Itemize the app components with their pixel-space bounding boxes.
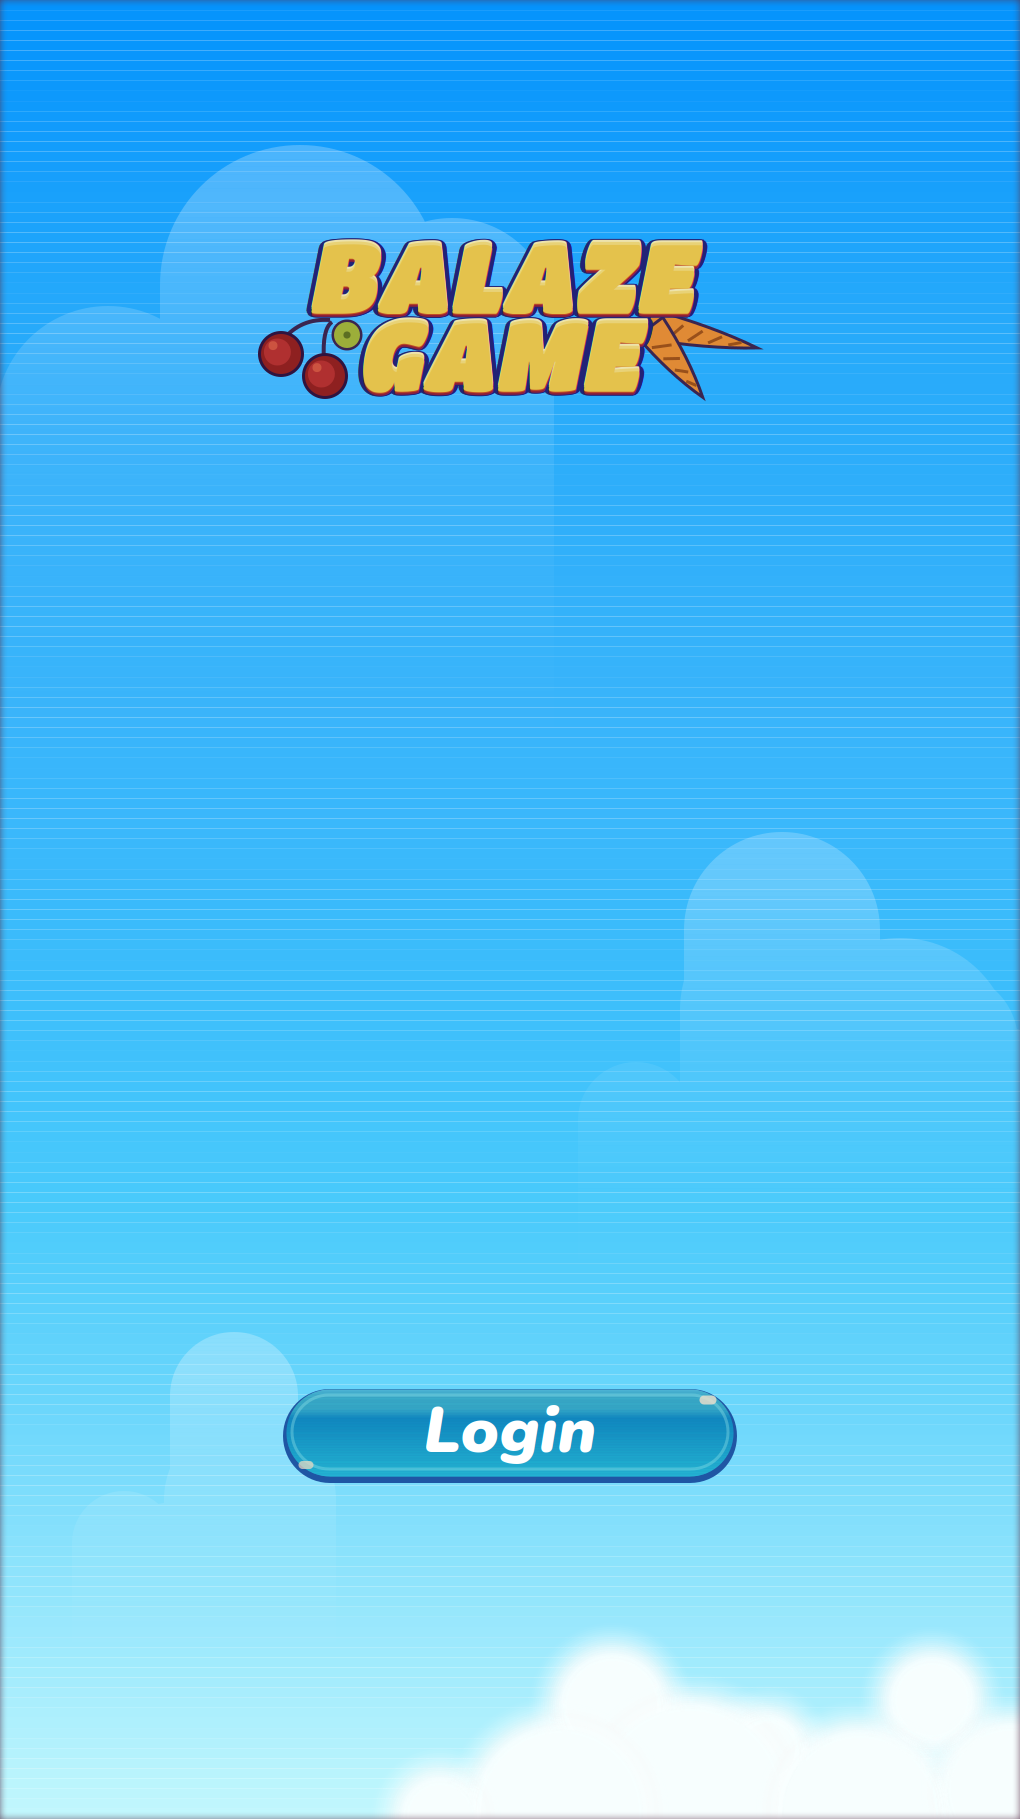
- staticText: GAME: [360, 296, 643, 408]
- staticText: BALAZE: [309, 214, 695, 325]
- staticText: GAME: [357, 292, 640, 403]
- staticText: BALAZE: [312, 220, 698, 332]
- staticText: BALAZE: [303, 222, 689, 333]
- staticText: BALAZE: [305, 214, 691, 325]
- staticText: GAME: [355, 300, 638, 412]
- staticText: GAME: [355, 301, 638, 413]
- staticText: GAME: [351, 298, 634, 410]
- staticText: BALAZE: [307, 220, 693, 332]
- staticText: BALAZE: [307, 223, 693, 335]
- staticText: BALAZE: [307, 219, 693, 331]
- staticText: GAME: [354, 301, 637, 412]
- staticText: BALAZE: [307, 216, 693, 328]
- button[interactable]: Login: [283, 1387, 737, 1483]
- staticText: GAME: [360, 298, 643, 410]
- staticText: BALAZE: [309, 223, 695, 334]
- staticText: BALAZE: [310, 222, 696, 333]
- staticText: BALAZE: [307, 222, 693, 334]
- staticText: GAME: [354, 292, 637, 403]
- staticText: GAME: [352, 293, 635, 404]
- staticText: BALAZE: [303, 215, 689, 326]
- staticText: GAME: [355, 294, 638, 406]
- staticText: GAME: [357, 301, 640, 412]
- staticText: GAME: [355, 298, 638, 410]
- staticText: BALAZE: [310, 215, 696, 326]
- staticText: BALAZE: [307, 213, 693, 325]
- staticText: GAME: [350, 296, 633, 408]
- staticText: GAME: [355, 292, 638, 404]
- staticText: BALAZE: [312, 216, 698, 328]
- staticText: GAME: [355, 297, 638, 409]
- staticText: GAME: [359, 300, 642, 411]
- staticText: Login: [423, 1387, 596, 1475]
- staticText: GAME: [351, 294, 634, 406]
- staticText: BALAZE: [302, 218, 688, 330]
- staticText: BALAZE: [307, 214, 693, 326]
- staticText: GAME: [355, 291, 638, 403]
- staticText: BALAZE: [302, 220, 688, 332]
- staticText: BALAZE: [302, 216, 688, 328]
- staticText: GAME: [359, 293, 642, 404]
- staticText: GAME: [352, 300, 635, 411]
- staticText: BALAZE: [305, 223, 691, 334]
- staticText: BALAZE: [312, 218, 698, 330]
- staticText: GAME: [360, 294, 643, 406]
